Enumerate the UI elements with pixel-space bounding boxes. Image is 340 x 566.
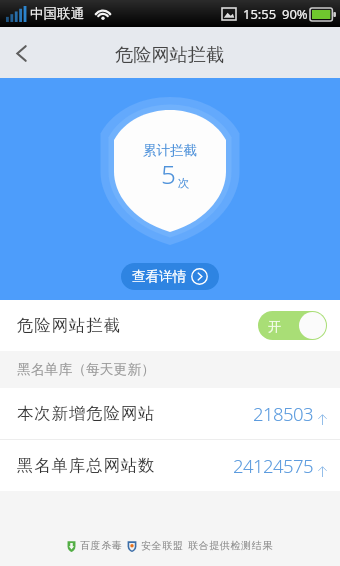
staticText: 危险网站拦截 [115, 43, 225, 66]
staticText: 5 [161, 156, 176, 191]
button[interactable]: 查看详情 [121, 263, 219, 290]
staticText: 中国联通 [30, 5, 84, 22]
staticText: 安全联盟 [141, 539, 184, 552]
staticText: 90% [282, 5, 308, 23]
staticText: 本次新增危险网站 [17, 403, 156, 424]
staticText: 黑名单库（每天更新） [17, 361, 155, 378]
button[interactable]: Back [0, 32, 42, 74]
staticText: 次 [178, 176, 190, 190]
staticText: 累计拦截 [143, 142, 197, 159]
staticText: 黑名单库总网站数 [17, 455, 156, 476]
staticText: 百度杀毒 [80, 539, 123, 552]
button[interactable]: 黑名单库总网站数 [0, 440, 340, 491]
button[interactable]: 危险网站拦截 [0, 300, 340, 351]
staticText: 危险网站拦截 [17, 315, 121, 336]
staticText: 联合提供检测结果 [188, 539, 273, 552]
staticText: 开 [268, 318, 281, 334]
button[interactable]: 本次新增危险网站 [0, 388, 340, 439]
staticText: 查看详情 [132, 268, 186, 285]
button[interactable]: Toggle [258, 311, 327, 340]
staticText: 218503 [253, 401, 314, 426]
staticText: 15:55 [243, 5, 277, 23]
staticText: 24124575 [233, 453, 314, 478]
